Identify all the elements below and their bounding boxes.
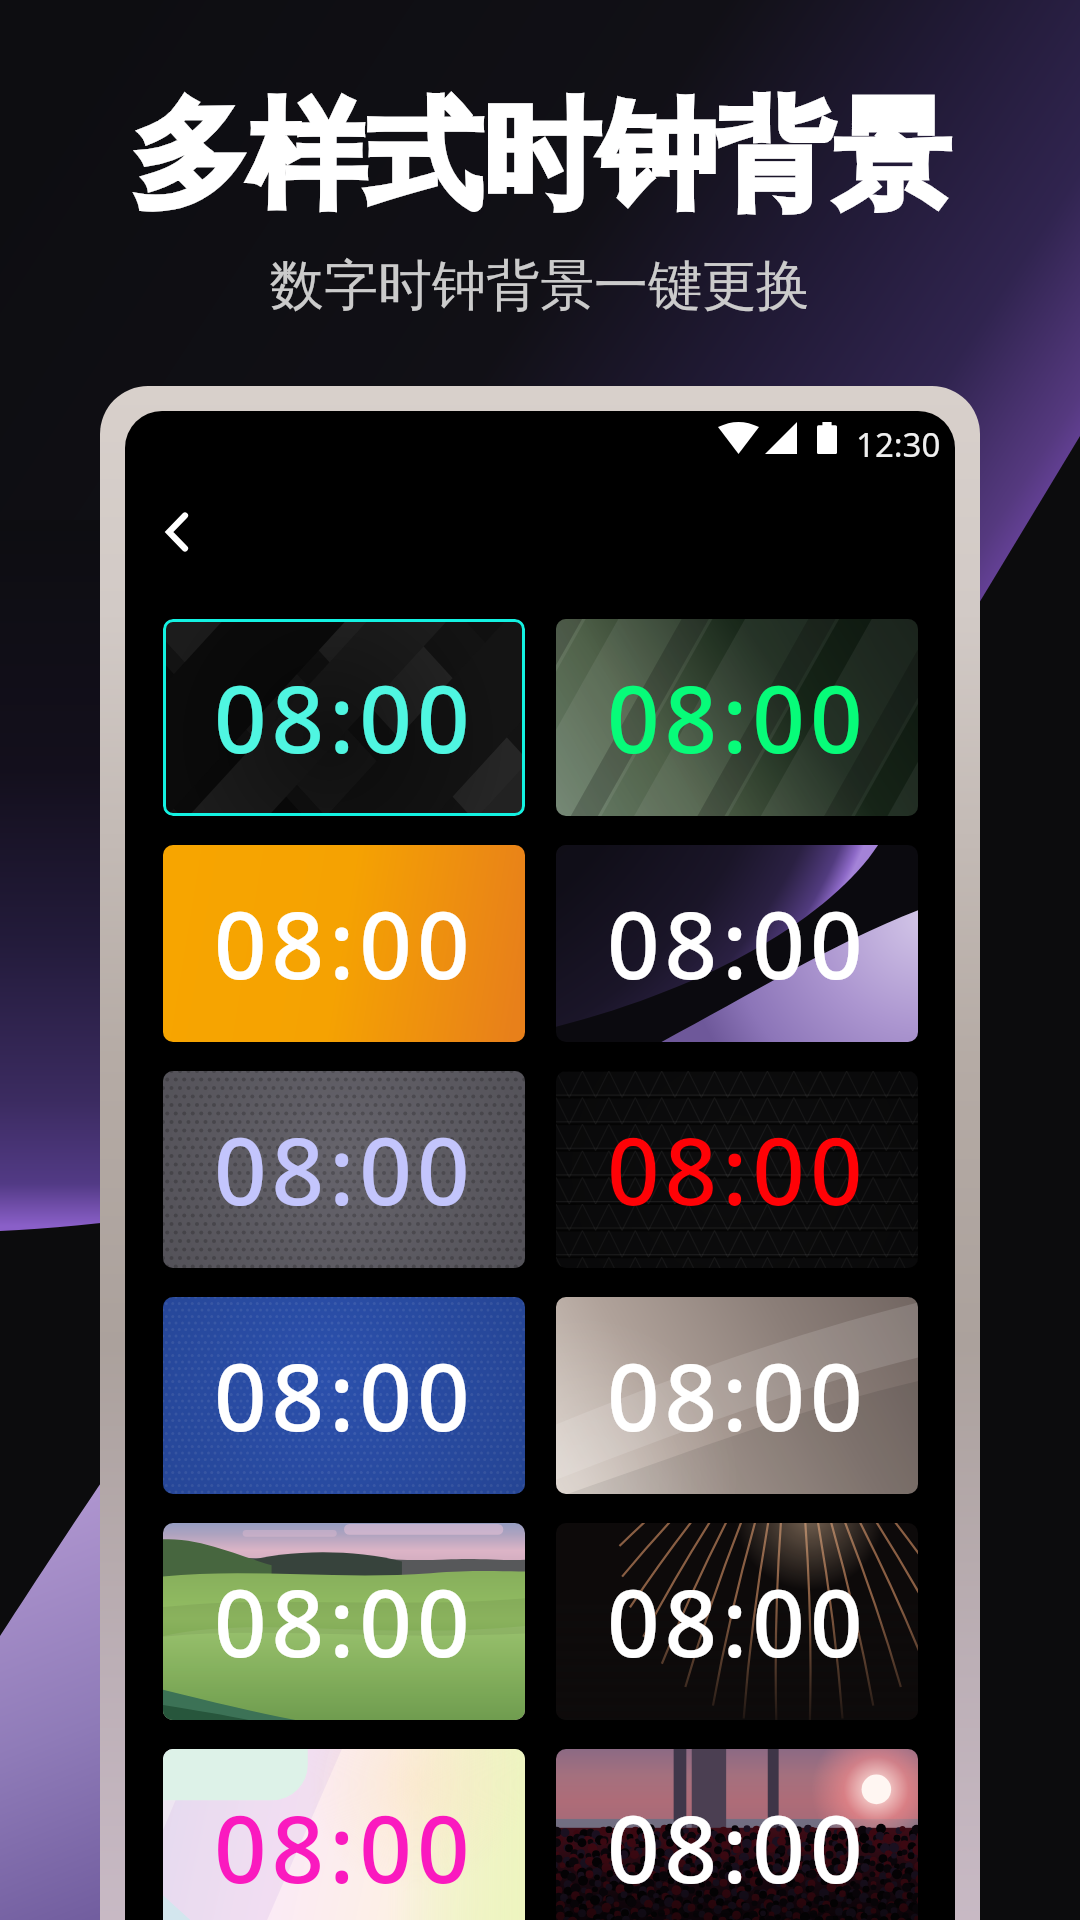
staticText: 08:00 bbox=[607, 881, 868, 1006]
button[interactable]: 08:00 bbox=[556, 1071, 918, 1268]
button[interactable]: Back bbox=[129, 484, 225, 580]
button[interactable]: 08:00 bbox=[556, 845, 918, 1042]
button[interactable]: 08:00 bbox=[556, 1297, 918, 1494]
button[interactable]: 08:00 bbox=[556, 1523, 918, 1720]
staticText: 08:00 bbox=[214, 1559, 475, 1684]
staticText: 08:00 bbox=[214, 1785, 475, 1910]
button[interactable]: 08:00 bbox=[163, 1297, 525, 1494]
staticText: 08:00 bbox=[607, 1107, 868, 1232]
button[interactable]: 08:00 bbox=[163, 845, 525, 1042]
staticText: 08:00 bbox=[214, 1333, 475, 1458]
button[interactable]: 08:00 bbox=[163, 1523, 525, 1720]
staticText: 08:00 bbox=[607, 1333, 868, 1458]
button[interactable]: 08:00 bbox=[556, 1749, 918, 1920]
staticText: 08:00 bbox=[607, 1785, 868, 1910]
staticText: 08:00 bbox=[607, 1559, 868, 1684]
staticText: 08:00 bbox=[214, 1107, 475, 1232]
staticText: 08:00 bbox=[607, 655, 868, 780]
button[interactable]: 08:00 bbox=[556, 619, 918, 816]
button[interactable]: 08:00 bbox=[163, 1071, 525, 1268]
staticText: 08:00 bbox=[214, 655, 475, 780]
staticText: 12:30 bbox=[856, 422, 941, 467]
staticText: 08:00 bbox=[214, 881, 475, 1006]
staticText: 数字时钟背景一键更换 bbox=[270, 252, 810, 320]
staticText: 多样式时钟背景 bbox=[131, 83, 950, 230]
button[interactable]: 08:00 bbox=[163, 1749, 525, 1920]
button[interactable]: 08:00 bbox=[163, 619, 525, 816]
